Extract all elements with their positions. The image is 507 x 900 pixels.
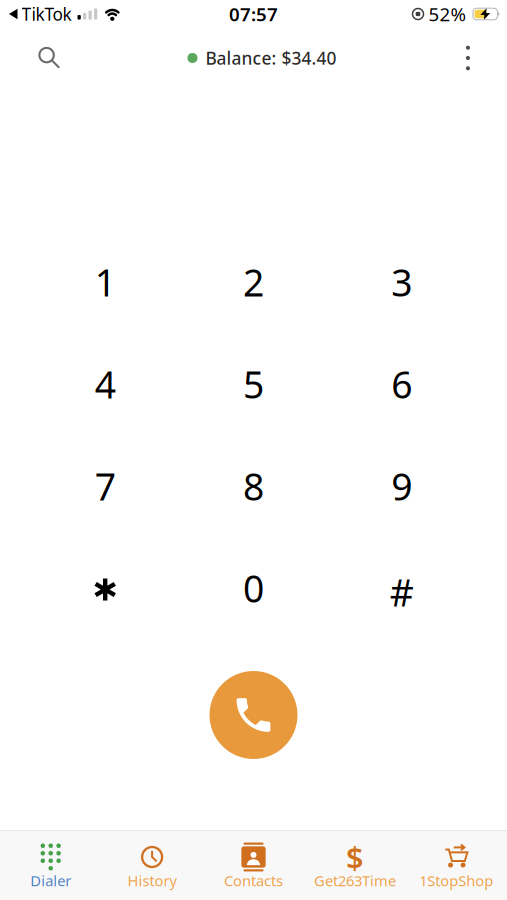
staticText: 2 — [243, 257, 264, 307]
button[interactable]: 1 — [31, 231, 179, 333]
staticText: 4 — [95, 359, 116, 409]
button[interactable]: Get263Time — [304, 841, 406, 890]
staticText: 3 — [391, 257, 412, 307]
button[interactable]: 5 — [179, 333, 328, 435]
button[interactable]: More options — [448, 46, 507, 70]
staticText: TikTok — [21, 2, 71, 25]
staticText: 5 — [243, 359, 264, 409]
button[interactable]: 8 — [179, 435, 328, 537]
staticText: 7 — [95, 461, 116, 511]
button[interactable]: 9 — [328, 435, 476, 537]
button[interactable]: Call — [209, 671, 297, 759]
button[interactable]: 3 — [328, 231, 476, 333]
button[interactable]: Dialer — [0, 841, 101, 890]
staticText: Get263Time — [314, 871, 396, 890]
staticText: Dialer — [30, 871, 71, 890]
staticText: $ — [346, 837, 364, 877]
button[interactable]: 6 — [328, 333, 476, 435]
button[interactable]: 7 — [31, 435, 179, 537]
staticText: 0 — [243, 563, 264, 613]
staticText: Balance: $34.40 — [205, 46, 336, 69]
staticText: Contacts — [224, 871, 283, 890]
button[interactable]: Search — [0, 47, 76, 68]
staticText: 07:57 — [229, 2, 278, 26]
staticText: 52% — [428, 2, 466, 26]
staticText: History — [128, 871, 177, 890]
staticText: 9 — [391, 461, 412, 511]
button[interactable]: 1StopShop — [406, 841, 507, 890]
staticText: # — [390, 567, 414, 617]
button[interactable]: 4 — [31, 333, 179, 435]
button[interactable]: 2 — [179, 231, 328, 333]
button[interactable]: 0 — [179, 537, 328, 639]
staticText: 6 — [391, 359, 412, 409]
button[interactable]: # — [328, 537, 476, 639]
button[interactable]: Contacts — [203, 841, 304, 890]
button[interactable]: * — [31, 537, 179, 639]
staticText: 1StopShop — [419, 871, 493, 890]
staticText: 1 — [95, 257, 116, 307]
staticText: 8 — [243, 461, 264, 511]
button[interactable]: History — [101, 841, 203, 890]
